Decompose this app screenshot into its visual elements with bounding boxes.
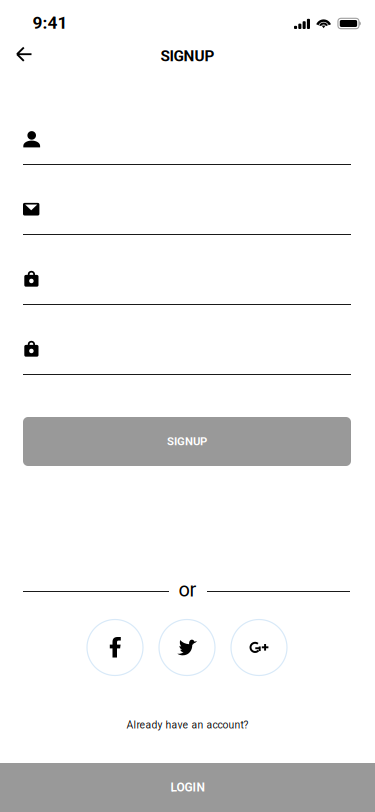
button[interactable]: LOGIN xyxy=(0,763,375,812)
button[interactable]: Back xyxy=(1,32,47,76)
staticText: 9:41 xyxy=(32,13,67,33)
staticText: SIGNUP xyxy=(167,435,207,448)
staticText: SIGNUP xyxy=(160,47,214,65)
button[interactable]: Already have an account? xyxy=(0,715,375,735)
button[interactable]: Sign up with Twitter xyxy=(159,619,215,675)
staticText: LOGIN xyxy=(170,780,204,795)
button[interactable]: Sign up with Facebook xyxy=(87,619,143,675)
staticText: or xyxy=(178,578,196,601)
button[interactable]: Sign up with Google Plus xyxy=(231,619,287,675)
staticText: Already have an account? xyxy=(126,719,248,731)
button[interactable]: SIGNUP xyxy=(23,417,351,466)
